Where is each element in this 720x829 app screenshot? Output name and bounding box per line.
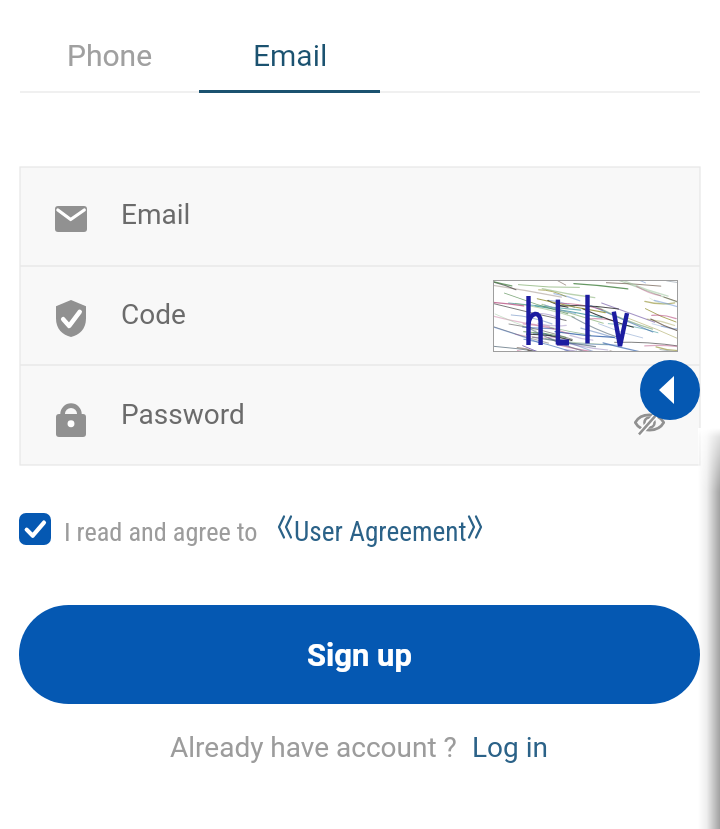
button[interactable]: Log in [470, 730, 550, 770]
staticText: User Agreement [294, 516, 467, 548]
button[interactable]: Previous [640, 360, 700, 420]
button[interactable]: Sign up [19, 605, 700, 704]
button[interactable]: Refresh captcha [493, 280, 678, 352]
button[interactable]: Show password [627, 400, 671, 444]
staticText: Sign up [307, 637, 412, 673]
staticText: Phone [67, 38, 153, 73]
button[interactable]: User Agreement [276, 512, 484, 552]
staticText: I read and agree to [64, 517, 258, 548]
staticText: Email [121, 198, 191, 231]
button[interactable]: I read and agree to [19, 505, 264, 553]
staticText: Already have account ? [170, 731, 457, 764]
staticText: Email [253, 38, 328, 73]
button[interactable]: Code [20, 266, 700, 365]
staticText: Code [121, 298, 186, 331]
staticText: Log in [472, 731, 548, 764]
button[interactable]: Phone [20, 0, 200, 92]
button[interactable]: Email [200, 0, 380, 92]
button[interactable]: Email [20, 167, 700, 266]
staticText: Password [121, 398, 245, 431]
button[interactable]: Password [20, 365, 700, 465]
